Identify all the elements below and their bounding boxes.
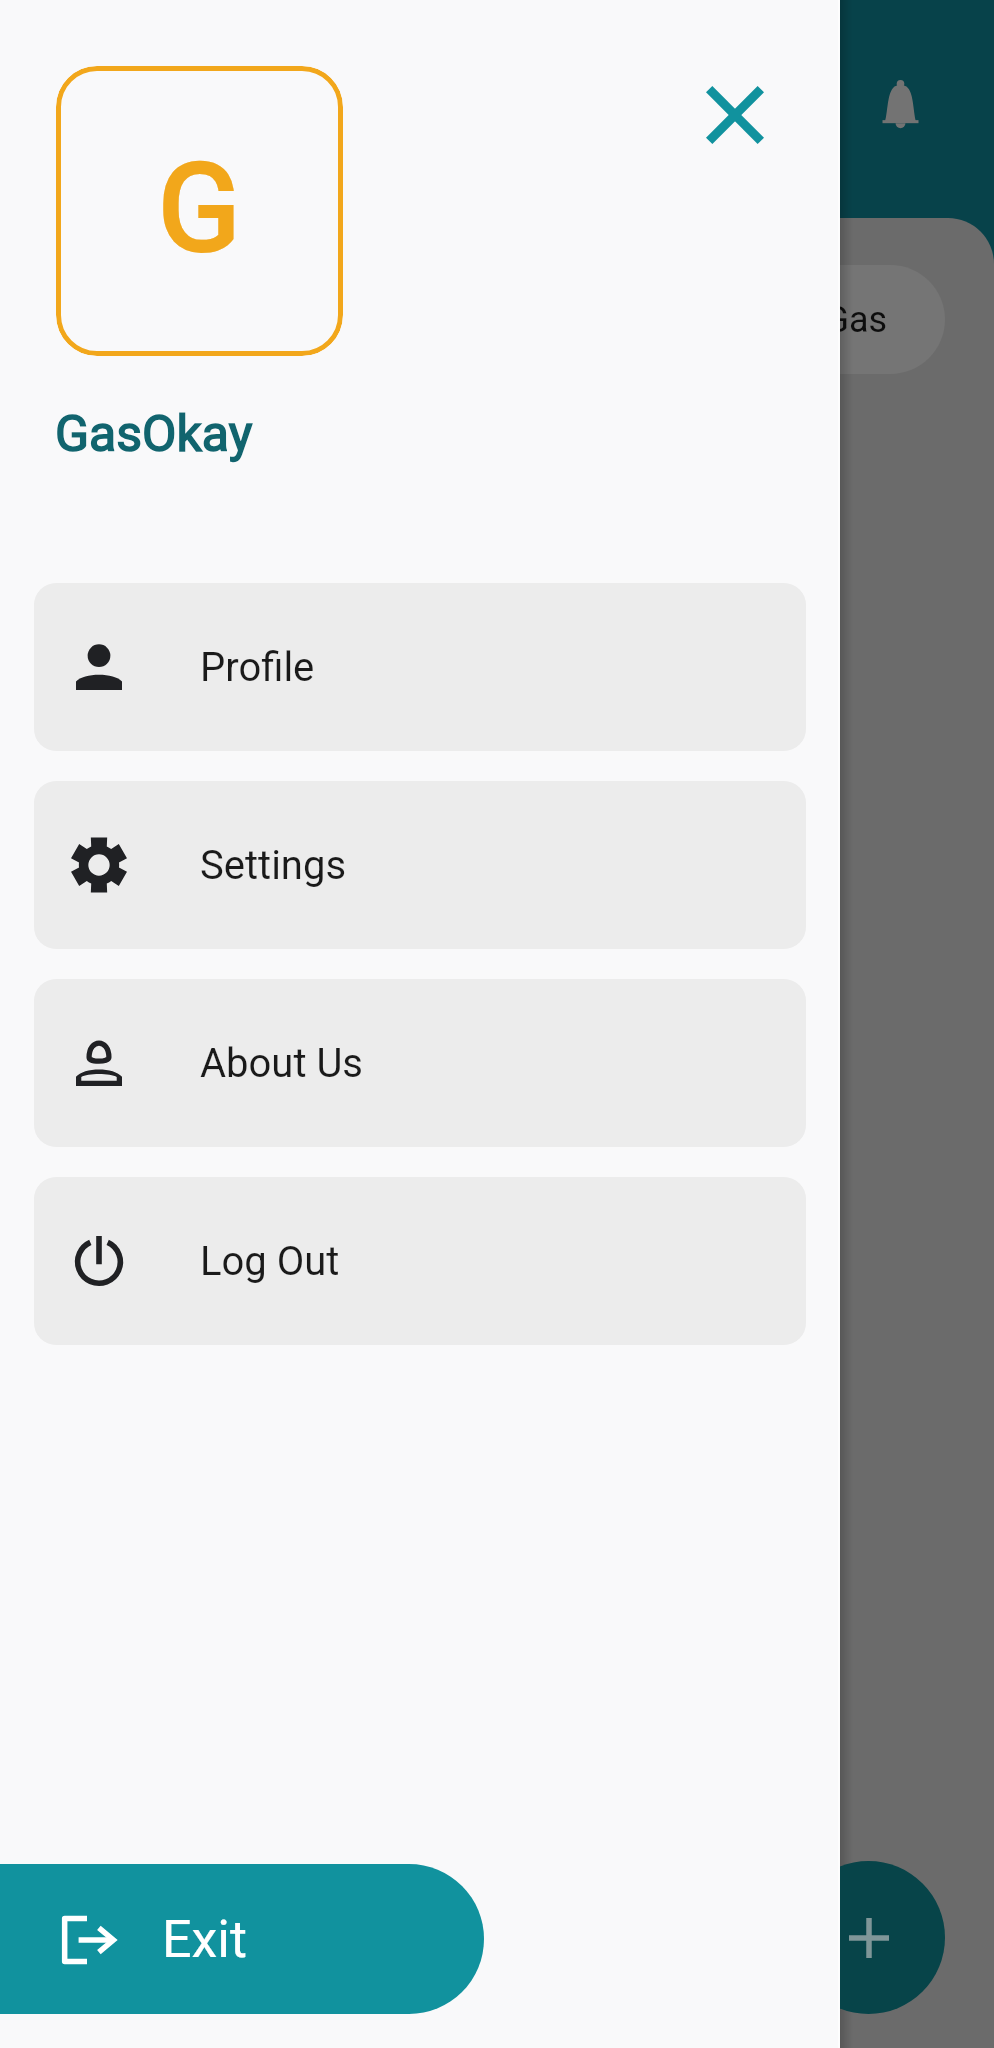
staticText: Exit: [162, 1909, 248, 1970]
button[interactable]: About Us: [34, 979, 806, 1147]
button[interactable]: Log Out: [34, 1177, 806, 1345]
staticText: GasOkay: [55, 405, 253, 464]
button[interactable]: Exit: [0, 1864, 484, 2014]
staticText: Profile: [200, 644, 315, 691]
button[interactable]: Add: [792, 1861, 945, 2014]
button[interactable]: Notifications: [878, 80, 923, 135]
staticText: G: [158, 138, 241, 280]
staticText: About Us: [200, 1040, 364, 1087]
button[interactable]: Profile: [34, 583, 806, 751]
staticText: Search Gas: [705, 299, 888, 341]
staticText: Log Out: [200, 1238, 340, 1285]
button[interactable]: Close drawer: [687, 67, 783, 163]
button[interactable]: Settings: [34, 781, 806, 949]
staticText: Settings: [200, 842, 347, 889]
